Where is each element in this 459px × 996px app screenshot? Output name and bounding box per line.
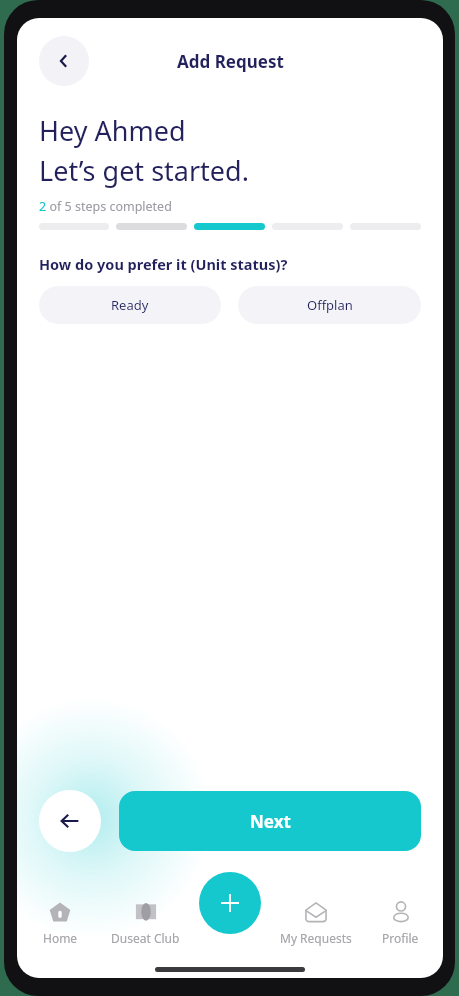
- staticText: Ready: [111, 296, 149, 314]
- staticText: My Requests: [280, 930, 352, 946]
- button[interactable]: Offplan: [238, 286, 421, 324]
- staticText: Duseat Club: [111, 930, 180, 946]
- button[interactable]: Duseat Club: [103, 898, 188, 948]
- staticText: Profile: [382, 930, 419, 946]
- button[interactable]: My Requests: [273, 898, 358, 948]
- staticText: Offplan: [307, 296, 353, 314]
- staticText: How do you prefer it (Unit status)?: [39, 254, 288, 274]
- staticText: Add Request: [177, 50, 284, 73]
- staticText: Let’s get started.: [39, 152, 249, 189]
- staticText: Hey Ahmed: [39, 112, 186, 149]
- button[interactable]: Next: [119, 791, 421, 851]
- button[interactable]: Back: [39, 36, 89, 86]
- staticText: Next: [250, 810, 291, 833]
- button[interactable]: Home: [17, 898, 103, 948]
- button[interactable]: Previous: [39, 790, 101, 852]
- button[interactable]: Add: [199, 872, 261, 934]
- staticText: 2 of 5 steps completed: [39, 198, 172, 215]
- button[interactable]: Profile: [358, 898, 443, 948]
- staticText: Home: [43, 930, 78, 946]
- button[interactable]: Ready: [39, 286, 221, 324]
